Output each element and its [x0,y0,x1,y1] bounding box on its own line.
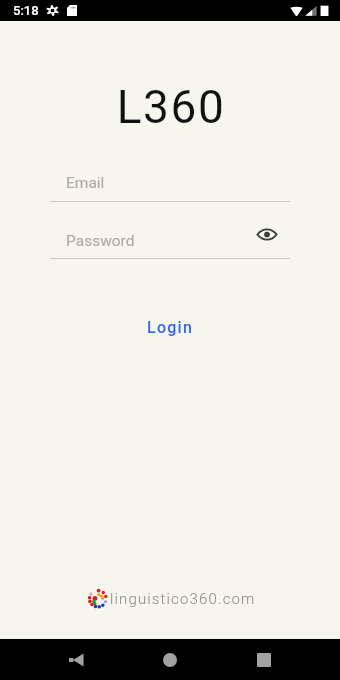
staticText: 5:18 [13,3,39,18]
staticText: linguistico360.com [110,590,256,608]
button[interactable]: Show password [253,220,281,248]
button[interactable]: Recent apps [242,639,286,680]
button[interactable]: Login [131,310,210,345]
button[interactable]: Back [54,639,98,680]
staticText: Email [66,174,105,192]
button[interactable]: Home [148,639,192,680]
staticText: L360 [1,80,340,134]
staticText: Password [66,232,135,250]
staticText: Login [147,318,194,337]
